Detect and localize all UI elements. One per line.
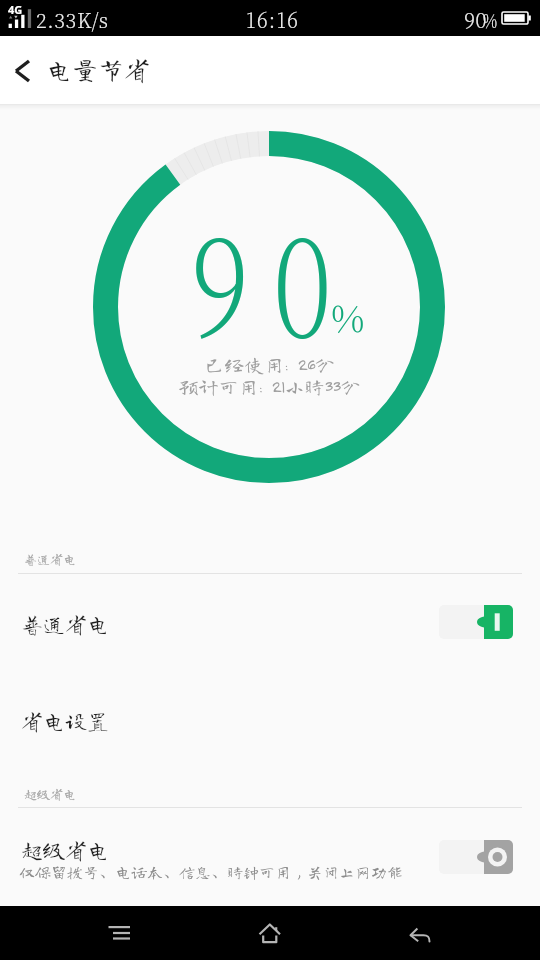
staticText: 超级省电 bbox=[21, 839, 110, 861]
staticText: 省电设置 bbox=[21, 710, 110, 732]
button[interactable]: Home bbox=[210, 906, 330, 960]
button[interactable] bbox=[0, 668, 540, 758]
staticText: 2.33K/s bbox=[36, 5, 109, 34]
staticText: 仅保留拨号、电话本、信息、时钟可用，关闭上网功能 bbox=[19, 864, 404, 880]
staticText: 16:16 bbox=[246, 5, 300, 34]
button[interactable] bbox=[0, 810, 540, 906]
staticText: % bbox=[483, 6, 498, 33]
button[interactable]: Back bbox=[0, 36, 46, 105]
staticText: 普通省电 bbox=[24, 553, 77, 566]
staticText: 电量节省 bbox=[46, 56, 151, 82]
staticText: 9 bbox=[190, 183, 250, 376]
staticText: 0 bbox=[273, 183, 332, 376]
staticText: 已经使用: 26分 bbox=[204, 354, 335, 374]
button[interactable]: Switch on bbox=[439, 605, 513, 639]
staticText: 预计可用: 21小时33分 bbox=[178, 376, 361, 396]
staticText: 4G bbox=[8, 2, 23, 17]
button[interactable] bbox=[0, 576, 540, 668]
staticText: 超级省电 bbox=[24, 788, 77, 801]
staticText: % bbox=[331, 289, 365, 342]
button[interactable]: Switch off bbox=[439, 840, 513, 874]
staticText: 普通省电 bbox=[21, 613, 110, 635]
button[interactable]: Back bbox=[360, 906, 480, 960]
staticText: 90 bbox=[464, 5, 487, 34]
button[interactable]: Menu bbox=[60, 906, 180, 960]
